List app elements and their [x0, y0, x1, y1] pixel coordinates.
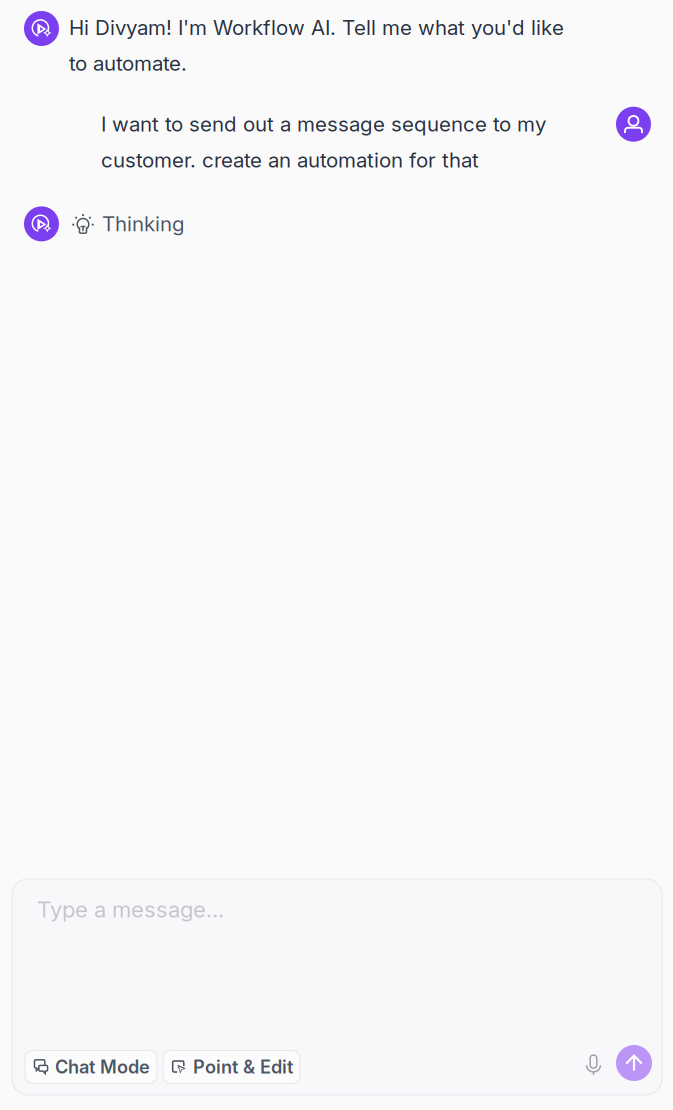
button[interactable]: Send	[616, 1049, 652, 1085]
button[interactable]: Voice input	[574, 1051, 610, 1082]
button[interactable]: Point & Edit	[163, 1050, 300, 1083]
staticText: Thinking	[102, 211, 185, 236]
staticText: Hi Divyam! I'm Workflow AI. Tell me what…	[69, 15, 564, 76]
staticText: I want to send out a message sequence to…	[101, 112, 546, 172]
button[interactable]: Chat Mode	[25, 1050, 157, 1083]
staticText: Type a message...	[37, 896, 224, 923]
button[interactable]: Type a message...	[12, 879, 662, 952]
staticText: Point & Edit	[193, 1056, 293, 1078]
staticText: Chat Mode	[55, 1056, 150, 1078]
